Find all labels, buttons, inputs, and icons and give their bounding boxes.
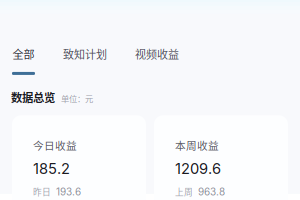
staticText: 昨日 <box>33 185 51 198</box>
button[interactable]: 致知计划 <box>63 46 135 75</box>
staticText: 单位：元 <box>61 92 93 104</box>
staticText: 963.8 <box>198 186 225 198</box>
button[interactable]: 今日收益 <box>12 115 146 200</box>
button[interactable]: 本周收益 <box>154 115 288 200</box>
staticText: 数据总览 <box>11 89 55 105</box>
staticText: 视频收益 <box>135 46 179 62</box>
staticText: 本周收益 <box>175 137 219 153</box>
staticText: 193.6 <box>56 186 81 198</box>
staticText: 致知计划 <box>63 46 107 62</box>
staticText: 1209.6 <box>175 160 221 177</box>
button[interactable]: 全部 <box>0 46 63 75</box>
staticText: 今日收益 <box>33 137 77 153</box>
staticText: 上周 <box>175 185 193 198</box>
button[interactable]: 视频收益 <box>135 46 179 75</box>
staticText: 全部 <box>12 46 34 62</box>
staticText: 185.2 <box>33 160 70 177</box>
